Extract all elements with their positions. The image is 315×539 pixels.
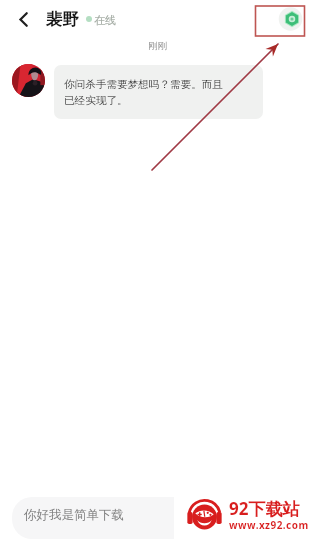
button[interactable]: 返回 [11,7,36,32]
button[interactable]: 你问杀手需要梦想吗？需要。而且 已经实现了。 [54,65,263,119]
staticText: 你好我是简单下载 [24,507,124,523]
button[interactable]: 92下载站 [229,497,300,520]
staticText: 你问杀手需要梦想吗？需要。而且 已经实现了。 [64,78,263,107]
staticText: www.xz92.com [229,518,309,532]
staticText: 裴野 [46,9,79,30]
staticText: 92下载站 [229,497,300,520]
button[interactable]: 头像 [12,64,45,97]
staticText: 在线 [94,13,116,27]
button[interactable]: 92下载站 [187,496,222,531]
staticText: 刚刚 [148,40,167,52]
button[interactable]: 微信运动 [278,5,306,33]
button[interactable]: 你好我是简单下载 [12,497,174,539]
